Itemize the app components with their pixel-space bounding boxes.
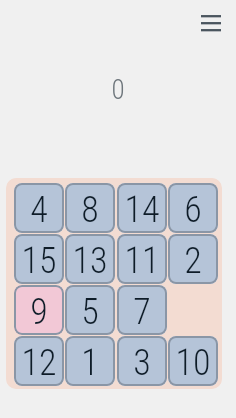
button[interactable]: 6 [168, 183, 218, 233]
staticText: 14 [124, 189, 160, 231]
staticText: 4 [30, 189, 48, 231]
staticText: 7 [133, 291, 151, 333]
button[interactable]: 8 [65, 183, 115, 233]
button[interactable]: 7 [117, 285, 167, 335]
button[interactable]: 15 [14, 234, 64, 284]
staticText: 10 [175, 342, 211, 384]
button[interactable]: 11 [117, 234, 167, 284]
button[interactable]: 13 [65, 234, 115, 284]
button[interactable]: 9 [14, 285, 64, 335]
button[interactable]: 1 [65, 336, 115, 386]
button[interactable]: 2 [168, 234, 218, 284]
staticText: 1 [81, 342, 99, 384]
staticText: 8 [81, 189, 99, 231]
staticText: 2 [184, 240, 202, 282]
staticText: 6 [184, 189, 202, 231]
staticText: 3 [133, 342, 151, 384]
staticText: 5 [81, 291, 99, 333]
button[interactable]: 3 [117, 336, 167, 386]
button[interactable]: 5 [65, 285, 115, 335]
button[interactable]: 10 [168, 336, 218, 386]
staticText: 0 [111, 74, 125, 106]
staticText: 12 [21, 342, 57, 384]
staticText: 13 [72, 240, 108, 282]
staticText: 9 [30, 291, 48, 333]
staticText: 11 [124, 240, 160, 282]
button[interactable]: 14 [117, 183, 167, 233]
button[interactable]: 4 [14, 183, 64, 233]
button[interactable]: Menu [196, 8, 226, 38]
button[interactable]: 12 [14, 336, 64, 386]
staticText: 15 [21, 240, 57, 282]
